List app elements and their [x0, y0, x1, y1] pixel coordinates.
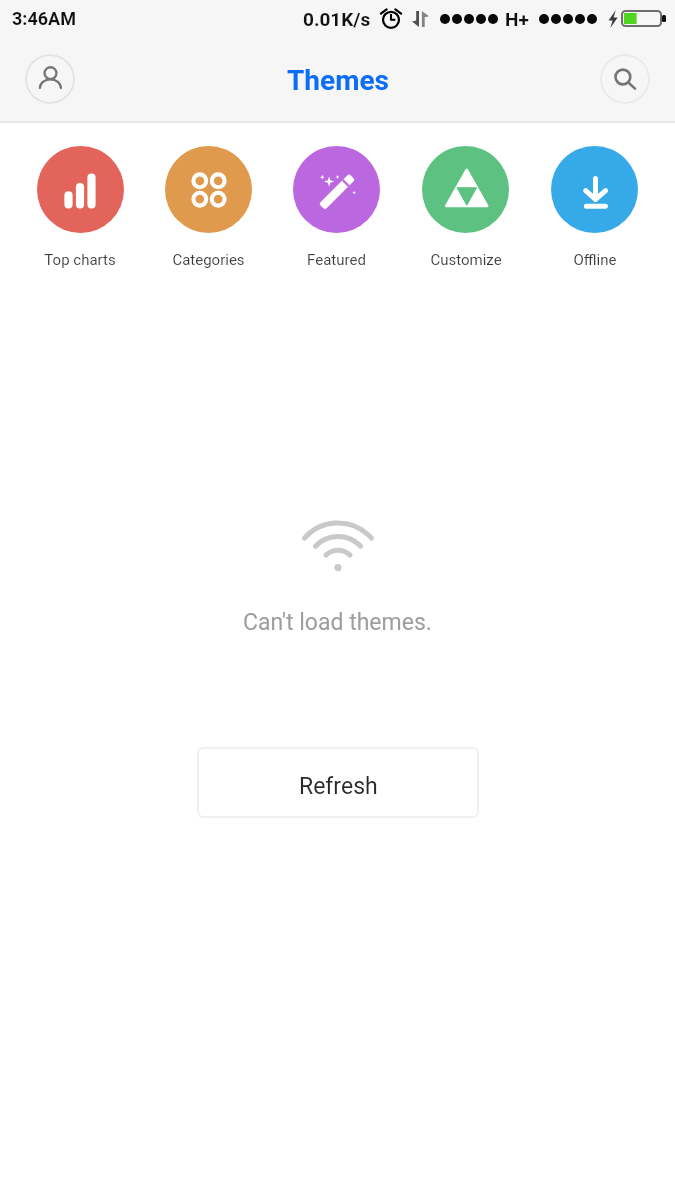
button[interactable]: Featured — [272, 122, 401, 285]
button[interactable]: Customize — [401, 122, 530, 285]
button[interactable]: Top charts — [16, 122, 144, 285]
button[interactable]: Offline — [530, 122, 659, 285]
staticText: Refresh — [299, 773, 378, 800]
staticText: Customize — [430, 251, 502, 269]
staticText: 3:46AM — [12, 8, 76, 29]
staticText: 0.01K/s — [303, 8, 371, 30]
staticText: Can't load themes. — [243, 609, 432, 636]
button[interactable]: Categories — [144, 122, 272, 285]
staticText: Top charts — [44, 251, 116, 269]
button[interactable]: Account — [25, 54, 75, 104]
button[interactable]: Search — [600, 54, 650, 104]
button[interactable]: Refresh — [197, 747, 479, 818]
staticText: H+ — [505, 8, 529, 30]
staticText: Offline — [573, 251, 617, 269]
staticText: Themes — [287, 64, 389, 97]
staticText: Categories — [172, 251, 245, 269]
staticText: Featured — [307, 251, 366, 269]
